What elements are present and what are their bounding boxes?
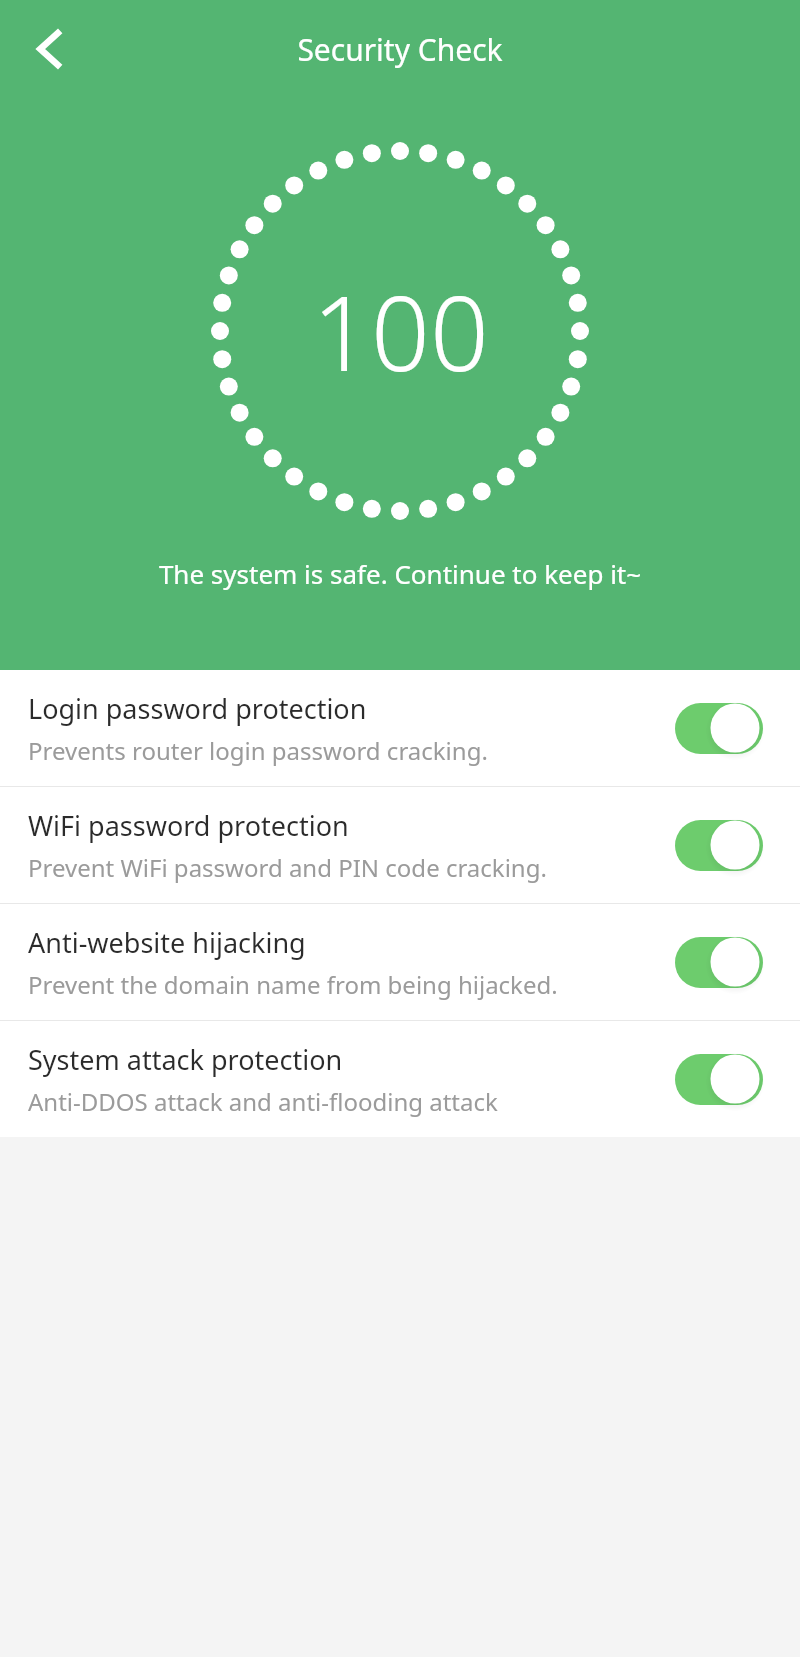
button[interactable]: Toggle protection xyxy=(675,934,763,990)
staticText: System attack protection xyxy=(28,1041,343,1078)
staticText: Login password protection xyxy=(28,690,367,727)
staticText: Prevents router login password cracking. xyxy=(28,734,488,767)
button[interactable]: Toggle protection xyxy=(675,700,763,756)
staticText: 100 xyxy=(312,261,489,401)
staticText: Anti-website hijacking xyxy=(28,924,306,961)
staticText: Prevent WiFi password and PIN code crack… xyxy=(28,851,547,884)
button[interactable]: Login password protection xyxy=(0,670,800,786)
staticText: Prevent the domain name from being hijac… xyxy=(28,968,558,1001)
button[interactable]: Back xyxy=(14,10,92,88)
button[interactable]: System attack protection xyxy=(0,1021,800,1137)
button[interactable]: Toggle protection xyxy=(675,1051,763,1107)
staticText: Security Check xyxy=(297,29,503,70)
staticText: The system is safe. Continue to keep it~ xyxy=(0,556,800,591)
staticText: Anti-DDOS attack and anti-flooding attac… xyxy=(28,1085,498,1118)
staticText: WiFi password protection xyxy=(28,807,349,844)
button[interactable]: Toggle protection xyxy=(675,817,763,873)
button[interactable]: WiFi password protection xyxy=(0,787,800,903)
button[interactable]: Anti-website hijacking xyxy=(0,904,800,1020)
